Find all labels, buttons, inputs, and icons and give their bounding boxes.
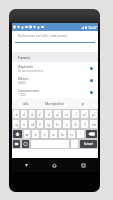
button[interactable]: i xyxy=(72,110,79,118)
button[interactable]: p xyxy=(69,98,98,109)
button[interactable]: Shift xyxy=(13,130,22,138)
button[interactable]: Recherchez par ville, code postal... xyxy=(12,31,98,43)
button[interactable]: h xyxy=(54,120,61,128)
staticText: l xyxy=(84,122,86,127)
button[interactable]: y xyxy=(54,110,61,118)
staticText: y xyxy=(56,112,59,117)
staticText: w xyxy=(25,132,29,137)
staticText: u xyxy=(65,112,68,117)
button[interactable]: alix xyxy=(12,98,40,109)
button[interactable]: l xyxy=(81,120,88,128)
staticText: 5 xyxy=(49,110,51,113)
staticText: x xyxy=(34,132,37,137)
staticText: 9 xyxy=(85,110,87,113)
staticText: c xyxy=(44,132,46,137)
button[interactable]: j xyxy=(63,120,70,128)
button[interactable]: z xyxy=(21,110,27,118)
button[interactable]: a xyxy=(13,110,19,118)
button[interactable]: Delete xyxy=(86,130,97,138)
staticText: 11000 xyxy=(18,93,26,97)
staticText: f xyxy=(39,122,41,127)
staticText: n xyxy=(70,132,73,137)
staticText: m xyxy=(92,122,96,127)
staticText: o xyxy=(83,112,86,117)
staticText: r xyxy=(39,112,41,117)
button[interactable]: Raphaele xyxy=(12,62,98,74)
button[interactable]: Recents xyxy=(69,158,98,172)
button[interactable]: o xyxy=(81,110,88,118)
button[interactable]: v xyxy=(50,130,57,138)
staticText: i xyxy=(75,112,77,117)
staticText: Montpellier xyxy=(45,101,65,106)
button[interactable]: s xyxy=(21,120,27,128)
button[interactable]: k xyxy=(72,120,79,128)
staticText: 0 xyxy=(94,110,96,113)
staticText: a xyxy=(15,112,18,117)
button[interactable]: n xyxy=(68,130,75,138)
button[interactable]: Back xyxy=(12,158,40,172)
staticText: 8 xyxy=(76,110,78,113)
staticText: 30000 xyxy=(18,81,26,85)
staticText: g xyxy=(47,122,50,127)
staticText: 1 xyxy=(16,110,18,113)
button[interactable]: x xyxy=(32,130,39,138)
staticText: Raphaele xyxy=(18,64,34,69)
staticText: p xyxy=(92,112,95,117)
staticText: d xyxy=(31,122,34,127)
button[interactable]: p xyxy=(90,110,97,118)
staticText: Recherchez par ville, code postal... xyxy=(18,34,70,38)
staticText: Nîmes xyxy=(18,76,29,81)
staticText: 7 xyxy=(67,110,69,113)
button[interactable]: Symbols xyxy=(13,140,20,148)
button[interactable]: f xyxy=(37,120,43,128)
staticText: s xyxy=(23,122,25,127)
staticText: 2 xyxy=(24,110,26,113)
button[interactable]: q xyxy=(13,120,19,128)
staticText: 24 rue du commerce xyxy=(18,69,44,73)
staticText: 6 xyxy=(58,110,60,113)
button[interactable]: Nîmes xyxy=(12,74,98,86)
staticText: ' xyxy=(80,132,81,137)
staticText: q xyxy=(15,122,18,127)
button[interactable]: u xyxy=(63,110,70,118)
staticText: z xyxy=(23,112,25,117)
staticText: 3 xyxy=(32,110,34,113)
staticText: e xyxy=(31,112,34,117)
staticText: 16:47 xyxy=(88,25,97,30)
staticText: Carcassonne xyxy=(18,88,39,93)
staticText: b xyxy=(61,132,64,137)
staticText: 4 xyxy=(40,110,42,113)
button[interactable]: b xyxy=(59,130,66,138)
button[interactable]: e xyxy=(29,110,35,118)
button[interactable]: c xyxy=(41,130,48,138)
staticText: h xyxy=(56,122,59,127)
button[interactable]: Suivant xyxy=(80,140,97,148)
staticText: Favoris xyxy=(18,55,31,60)
button[interactable]: Montpellier xyxy=(40,98,69,109)
staticText: t xyxy=(48,112,50,117)
staticText: Suivant xyxy=(84,142,94,146)
button[interactable]: ' xyxy=(77,130,84,138)
button[interactable]: t xyxy=(45,110,52,118)
staticText: p xyxy=(82,101,85,106)
button[interactable]: Change language xyxy=(22,140,29,148)
staticText: v xyxy=(52,132,55,137)
button[interactable]: Carcassonne xyxy=(12,86,98,98)
button[interactable]: d xyxy=(29,120,35,128)
button[interactable]: g xyxy=(45,120,52,128)
staticText: alix xyxy=(23,101,29,106)
button[interactable]: m xyxy=(90,120,97,128)
staticText: k xyxy=(74,122,77,127)
button[interactable]: Home xyxy=(40,158,69,172)
button[interactable]: r xyxy=(37,110,43,118)
button[interactable]: w xyxy=(24,130,30,138)
staticText: j xyxy=(66,122,68,127)
